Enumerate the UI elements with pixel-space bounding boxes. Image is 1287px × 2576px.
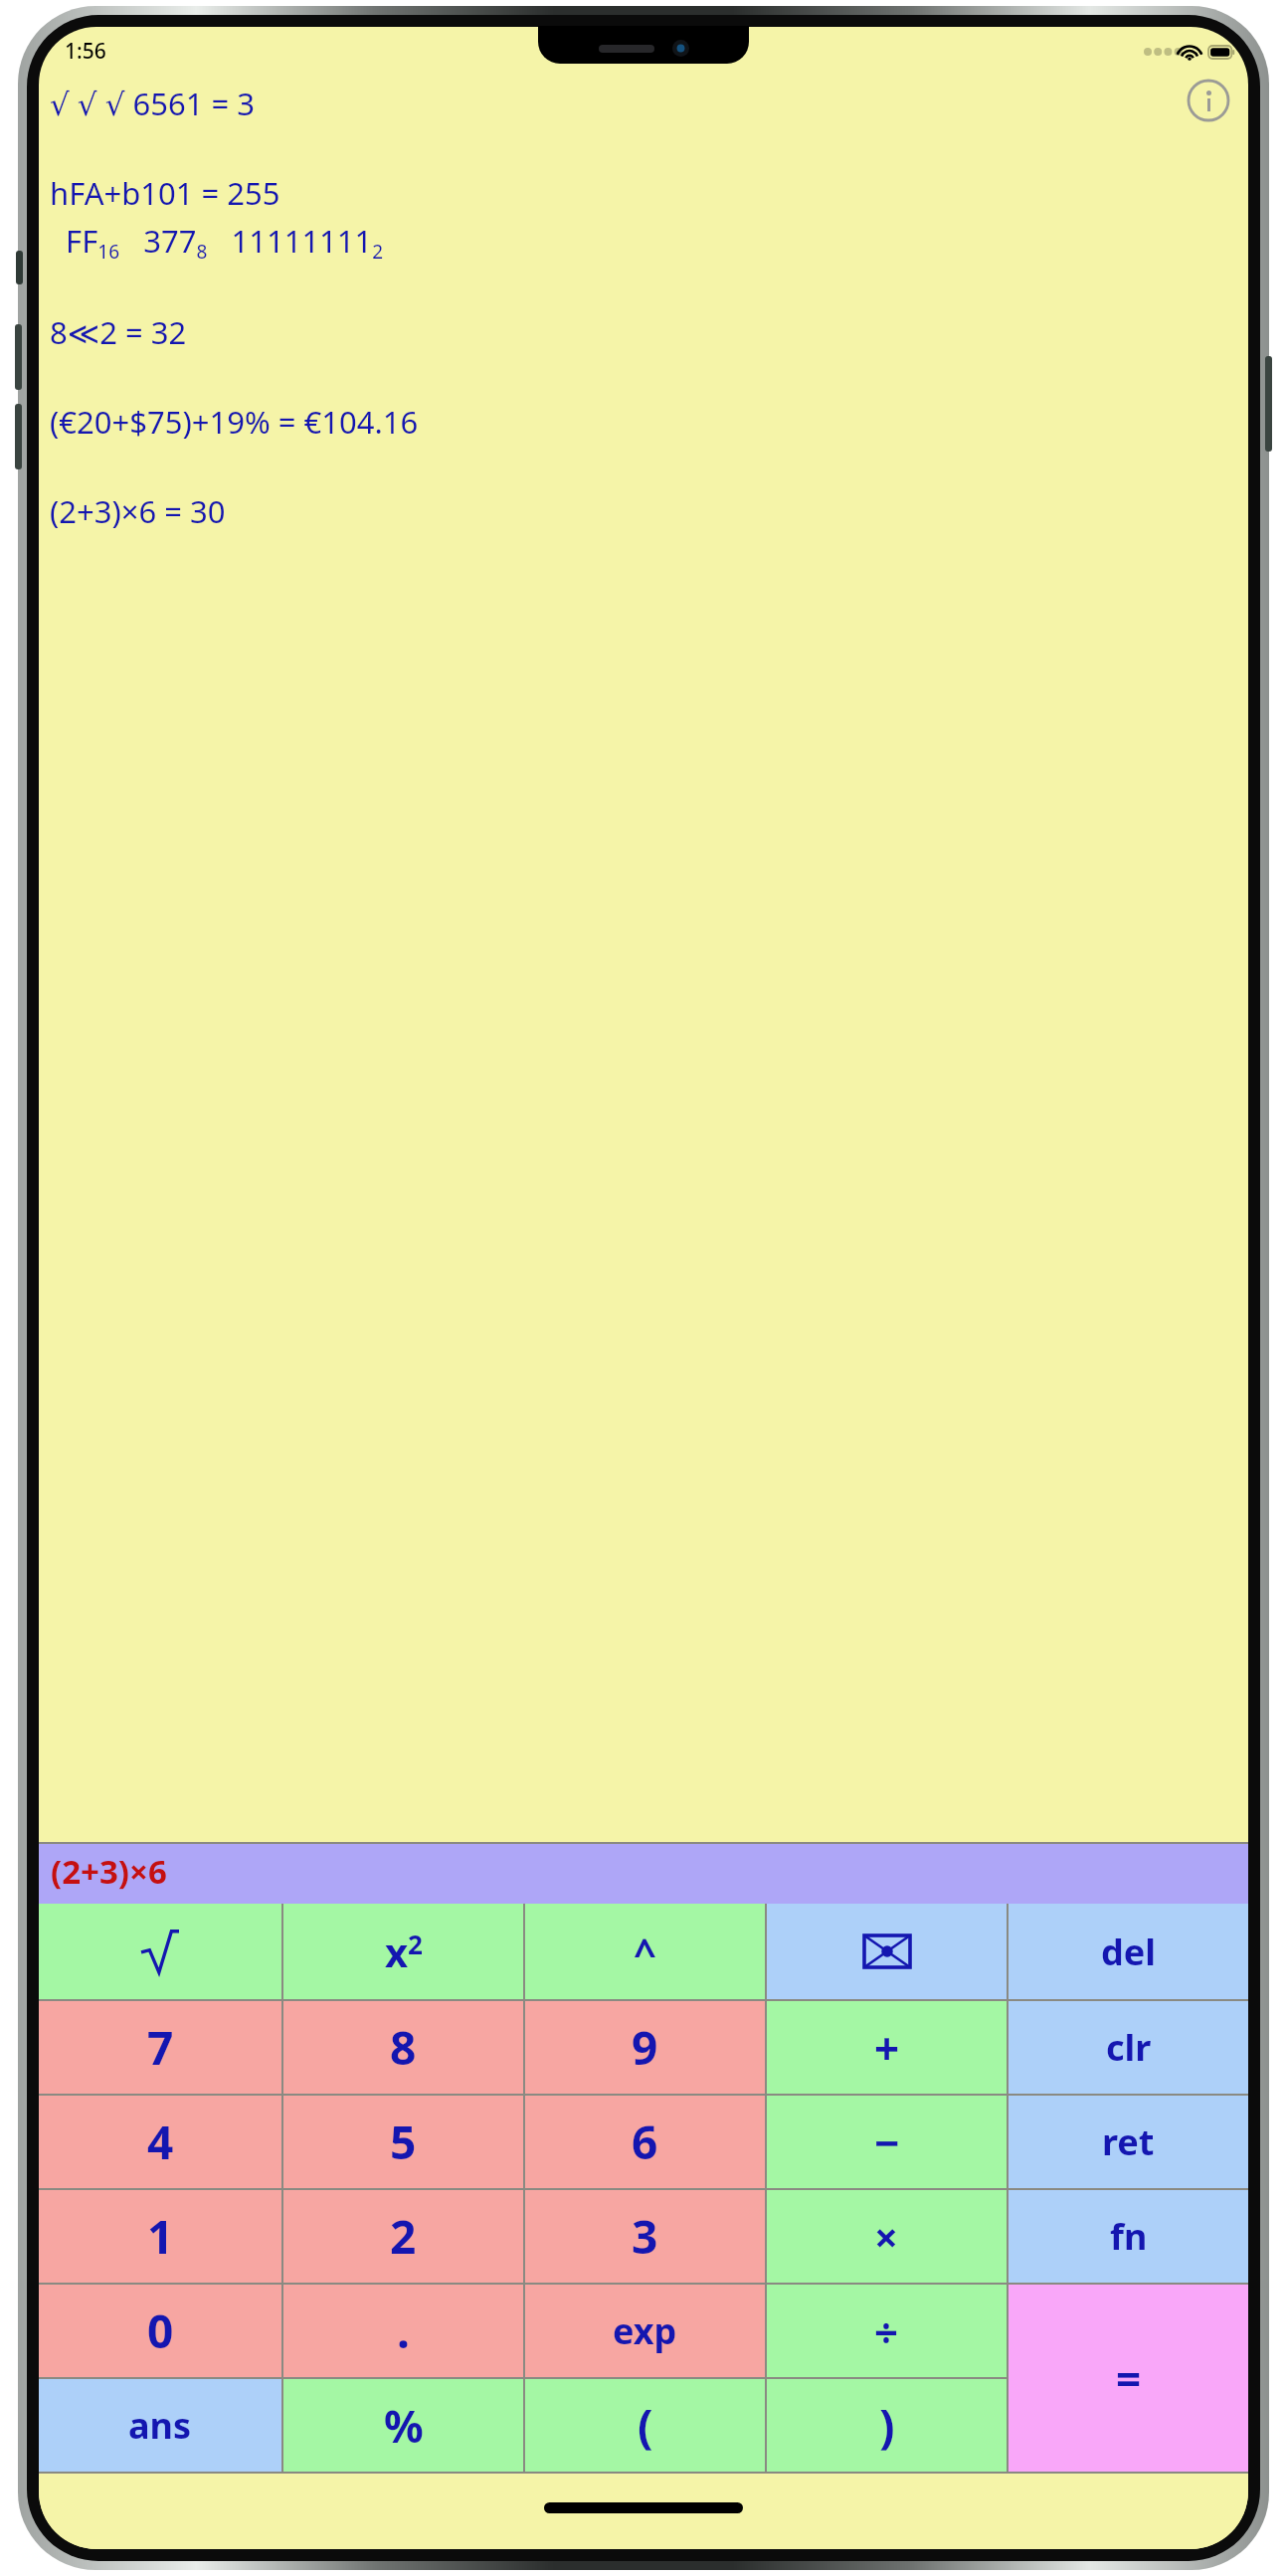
staticText: %: [384, 2396, 424, 2456]
staticText: .: [397, 2300, 410, 2362]
button[interactable]: +: [767, 2001, 1007, 2094]
staticText: FF16 3778 111111112: [50, 220, 384, 264]
staticText: ans: [128, 2401, 192, 2450]
staticText: del: [1101, 1928, 1156, 1976]
staticText: =: [1116, 2348, 1142, 2408]
staticText: ret: [1102, 2117, 1155, 2166]
button[interactable]: 8: [283, 2001, 523, 2094]
button[interactable]: exp: [525, 2285, 765, 2377]
button[interactable]: 3: [525, 2190, 765, 2283]
staticText: ÷: [874, 2302, 899, 2359]
button[interactable]: ret: [1009, 2096, 1248, 2188]
staticText: 2: [390, 2205, 417, 2268]
button[interactable]: 4: [39, 2096, 281, 2188]
button[interactable]: 6: [525, 2096, 765, 2188]
button[interactable]: =: [1009, 2285, 1248, 2472]
staticText: ): [879, 2394, 895, 2457]
staticText: ×: [874, 2208, 899, 2265]
staticText: 8≪2 = 32: [50, 311, 187, 353]
button[interactable]: .: [283, 2285, 523, 2377]
button[interactable]: Info: [1187, 79, 1230, 122]
button[interactable]: Send: [767, 1904, 1007, 1999]
staticText: 1:56: [65, 37, 106, 66]
button[interactable]: ×: [767, 2190, 1007, 2283]
staticText: −: [874, 2113, 900, 2172]
staticText: x2: [385, 1925, 423, 1978]
staticText: √ √ √ 6561 = 3: [50, 83, 255, 124]
staticText: 1: [147, 2205, 174, 2268]
button[interactable]: (: [525, 2379, 765, 2472]
staticText: (: [638, 2394, 653, 2457]
button[interactable]: 9: [525, 2001, 765, 2094]
button[interactable]: x2: [283, 1904, 523, 1999]
staticText: ^: [634, 1925, 656, 1978]
staticText: +: [874, 2018, 900, 2078]
button[interactable]: (2+3)×6: [39, 1842, 1248, 1904]
button[interactable]: fn: [1009, 2190, 1248, 2283]
staticText: (€20+$75)+19% = €104.16: [50, 401, 419, 443]
staticText: 7: [147, 2016, 174, 2079]
button[interactable]: 0: [39, 2285, 281, 2377]
button[interactable]: 7: [39, 2001, 281, 2094]
button[interactable]: 1: [39, 2190, 281, 2283]
staticText: fn: [1110, 2212, 1148, 2261]
staticText: 5: [390, 2111, 417, 2173]
staticText: 6: [632, 2111, 658, 2173]
staticText: exp: [613, 2306, 677, 2355]
staticText: (2+3)×6 = 30: [50, 490, 226, 532]
staticText: 0: [147, 2300, 174, 2362]
button[interactable]: 2: [283, 2190, 523, 2283]
button[interactable]: ): [767, 2379, 1007, 2472]
staticText: (2+3)×6: [51, 1849, 167, 1894]
staticText: 3: [632, 2205, 658, 2268]
button[interactable]: clr: [1009, 2001, 1248, 2094]
button[interactable]: 5: [283, 2096, 523, 2188]
button[interactable]: del: [1009, 1904, 1248, 1999]
staticText: 4: [147, 2111, 174, 2173]
staticText: clr: [1106, 2023, 1152, 2072]
button[interactable]: ans: [39, 2379, 281, 2472]
button[interactable]: [39, 1904, 281, 1999]
staticText: 9: [632, 2016, 658, 2079]
button[interactable]: ^: [525, 1904, 765, 1999]
button[interactable]: %: [283, 2379, 523, 2472]
button[interactable]: −: [767, 2096, 1007, 2188]
staticText: 8: [390, 2016, 417, 2079]
button[interactable]: ÷: [767, 2285, 1007, 2377]
staticText: hFA+b101 = 255: [50, 172, 280, 214]
